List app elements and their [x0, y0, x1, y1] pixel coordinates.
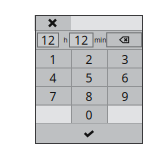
- staticText: 2: [85, 51, 92, 67]
- button[interactable]: 2: [71, 50, 107, 68]
- staticText: 9: [121, 88, 128, 104]
- staticText: 3: [121, 51, 128, 67]
- staticText: 1: [49, 51, 56, 67]
- button[interactable]: 3: [107, 50, 143, 68]
- button[interactable]: 6: [107, 68, 143, 87]
- button[interactable]: 7: [35, 87, 71, 105]
- button[interactable]: 0: [71, 105, 107, 124]
- staticText: 8: [85, 88, 92, 104]
- button[interactable]: 1: [35, 50, 71, 68]
- button[interactable]: 9: [107, 87, 143, 105]
- staticText: 0: [85, 107, 92, 123]
- staticText: h: [63, 35, 67, 44]
- staticText: 4: [49, 70, 56, 86]
- staticText: 6: [121, 70, 128, 86]
- button[interactable]: Confirm: [35, 123, 143, 143]
- staticText: 12: [74, 32, 88, 48]
- button[interactable]: 8: [71, 87, 107, 105]
- staticText: min: [94, 35, 106, 44]
- staticText: 5: [85, 70, 92, 86]
- button[interactable]: 5: [71, 68, 107, 87]
- button[interactable]: Close: [34, 15, 70, 31]
- button[interactable]: 4: [35, 68, 71, 87]
- button[interactable]: Delete: [107, 33, 142, 47]
- staticText: 12: [41, 32, 55, 48]
- staticText: 7: [49, 88, 56, 104]
